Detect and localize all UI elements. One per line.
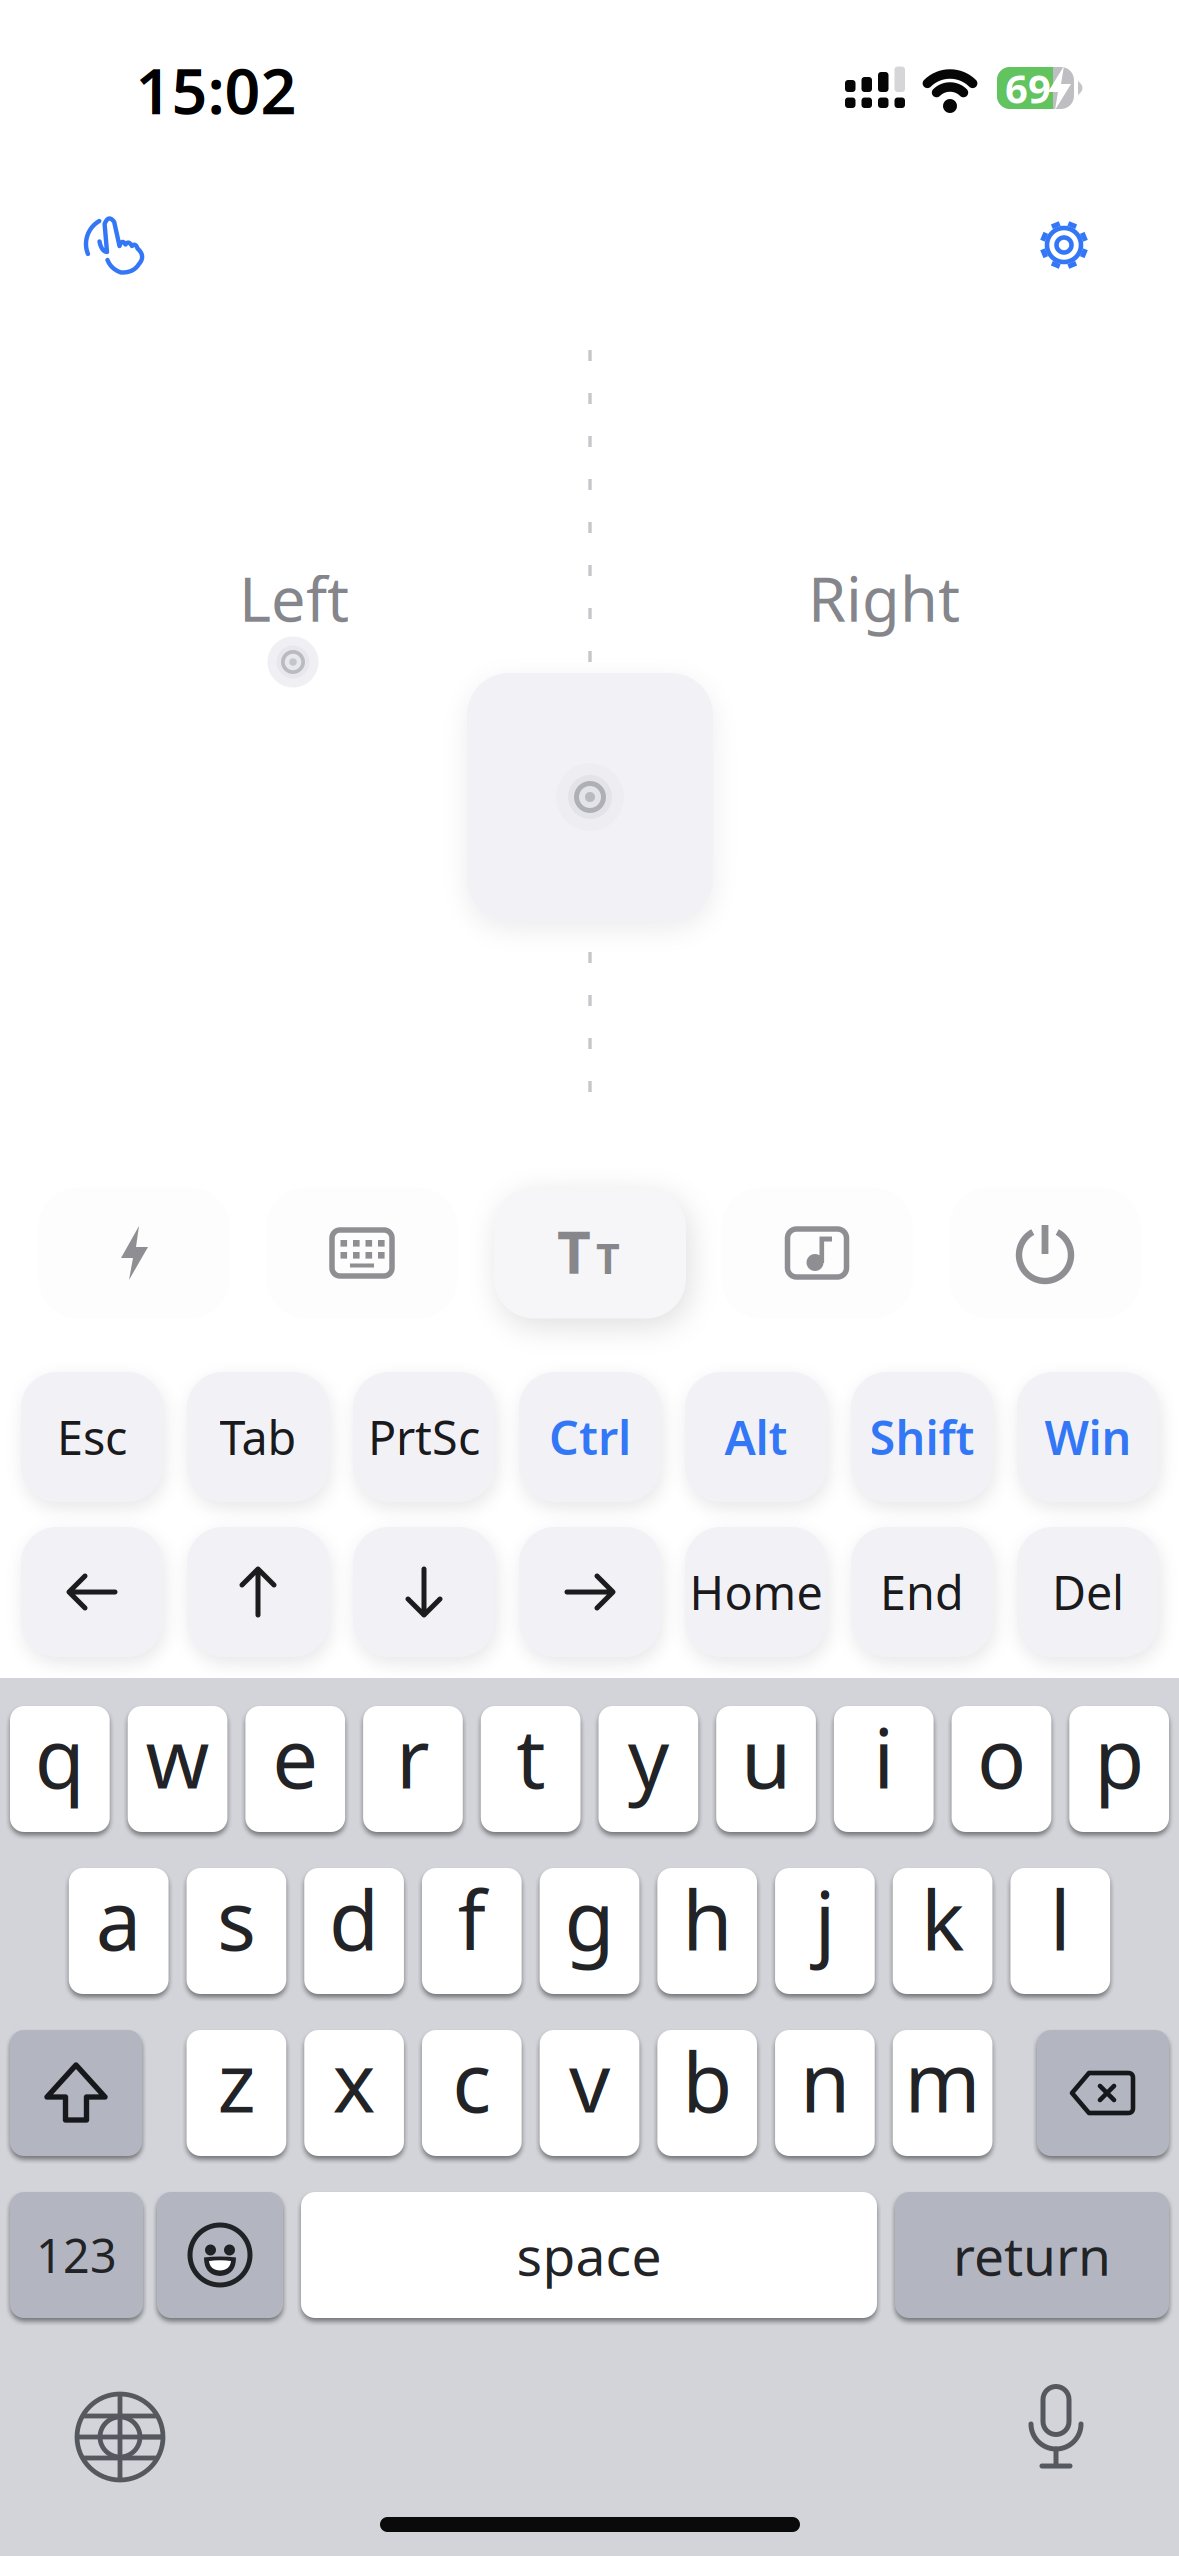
button[interactable]: k	[893, 1868, 992, 1994]
staticText: space	[516, 2220, 661, 2290]
button[interactable]	[1026, 2384, 1086, 2480]
staticText: k	[921, 1865, 964, 1973]
staticText: s	[217, 1865, 256, 1973]
button[interactable]: space	[301, 2192, 877, 2318]
button[interactable]	[157, 2192, 283, 2318]
button[interactable]: h	[657, 1868, 757, 1994]
button[interactable]: 123	[10, 2192, 143, 2318]
button[interactable]: q	[10, 1706, 110, 1832]
button[interactable]: v	[540, 2030, 639, 2156]
staticText: p	[1094, 1703, 1144, 1811]
button[interactable]	[353, 1527, 495, 1657]
button[interactable]: b	[657, 2030, 757, 2156]
staticText: T	[596, 1231, 620, 1285]
button[interactable]: c	[422, 2030, 522, 2156]
button[interactable]: Tab	[187, 1372, 329, 1502]
staticText: Shift	[869, 1406, 974, 1468]
button[interactable]	[76, 206, 152, 282]
staticText: l	[1050, 1865, 1071, 1973]
staticText: return	[953, 2220, 1111, 2290]
button[interactable]: Ctrl	[519, 1372, 661, 1502]
button[interactable]	[721, 1187, 913, 1318]
button[interactable]: PrtSc	[353, 1372, 495, 1502]
button[interactable]: t	[481, 1706, 580, 1832]
staticText: q	[35, 1703, 85, 1811]
button[interactable]: T	[494, 1187, 686, 1318]
staticText: Esc	[57, 1406, 127, 1468]
button[interactable]	[266, 1187, 458, 1318]
staticText: w	[146, 1703, 210, 1811]
button[interactable]: g	[540, 1868, 639, 1994]
button[interactable]: r	[363, 1706, 463, 1832]
staticText: g	[564, 1865, 614, 1973]
button[interactable]: n	[775, 2030, 875, 2156]
staticText: v	[569, 2027, 610, 2135]
staticText: 123	[36, 2224, 117, 2286]
staticText: 15:02	[135, 48, 296, 132]
button[interactable]	[519, 1527, 661, 1657]
button[interactable]: z	[187, 2030, 286, 2156]
button[interactable]	[1037, 2030, 1169, 2156]
staticText: Ctrl	[549, 1406, 631, 1468]
button[interactable]	[949, 1187, 1141, 1318]
button[interactable]: Alt	[685, 1372, 827, 1502]
button[interactable]	[187, 1527, 329, 1657]
button[interactable]: End	[851, 1527, 993, 1657]
staticText: x	[333, 2027, 376, 2135]
button[interactable]: w	[128, 1706, 227, 1832]
staticText: o	[977, 1703, 1026, 1811]
staticText: e	[272, 1703, 318, 1811]
button[interactable]: j	[775, 1868, 875, 1994]
staticText: b	[682, 2027, 732, 2135]
button[interactable]: Shift	[851, 1372, 993, 1502]
button[interactable]	[10, 2030, 142, 2156]
staticText: d	[329, 1865, 379, 1973]
button[interactable]: u	[716, 1706, 816, 1832]
staticText: i	[873, 1703, 894, 1811]
staticText: Home	[689, 1561, 822, 1623]
staticText: Left	[239, 557, 349, 639]
button[interactable]: Esc	[21, 1372, 163, 1502]
button[interactable]	[74, 2391, 166, 2483]
staticText: Win	[1044, 1406, 1131, 1468]
staticText: T	[557, 1212, 591, 1290]
staticText: y	[628, 1703, 669, 1811]
staticText: Right	[808, 557, 960, 639]
button[interactable]	[1026, 207, 1102, 283]
staticText: h	[682, 1865, 732, 1973]
button[interactable]: i	[834, 1706, 934, 1832]
button[interactable]: d	[304, 1868, 404, 1994]
staticText: Tab	[219, 1406, 296, 1468]
button[interactable]	[21, 1527, 163, 1657]
staticText: End	[880, 1561, 964, 1623]
staticText: PrtSc	[368, 1406, 480, 1468]
button[interactable]: m	[893, 2030, 992, 2156]
button[interactable]: return	[895, 2192, 1169, 2318]
button[interactable]: f	[422, 1868, 522, 1994]
staticText: Alt	[724, 1406, 787, 1468]
button[interactable]: o	[952, 1706, 1051, 1832]
button[interactable]	[467, 673, 713, 921]
button[interactable]: Win	[1017, 1372, 1159, 1502]
button[interactable]: e	[245, 1706, 345, 1832]
button[interactable]: x	[304, 2030, 404, 2156]
staticText: z	[217, 2027, 255, 2135]
staticText: m	[905, 2027, 981, 2135]
button[interactable]: Del	[1017, 1527, 1159, 1657]
staticText: j	[814, 1865, 835, 1973]
staticText: Del	[1052, 1561, 1124, 1623]
staticText: r	[396, 1703, 430, 1811]
staticText: f	[458, 1865, 486, 1973]
staticText: c	[452, 2027, 491, 2135]
staticText: u	[741, 1703, 791, 1811]
button[interactable]: Home	[685, 1527, 827, 1657]
staticText: t	[516, 1703, 545, 1811]
button[interactable]: a	[69, 1868, 168, 1994]
staticText: 69	[1005, 61, 1051, 114]
button[interactable]: y	[598, 1706, 698, 1832]
button[interactable]: l	[1010, 1868, 1110, 1994]
button[interactable]	[38, 1187, 230, 1318]
button[interactable]: s	[187, 1868, 286, 1994]
staticText: a	[96, 1865, 142, 1973]
button[interactable]: p	[1069, 1706, 1169, 1832]
